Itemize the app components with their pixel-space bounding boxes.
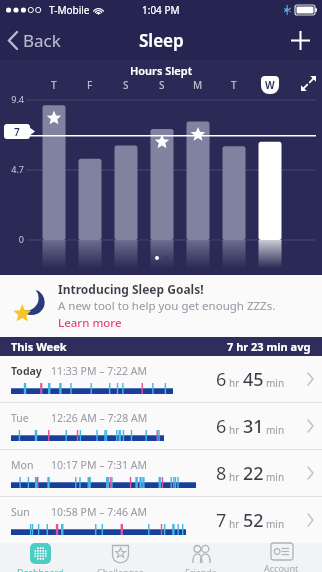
staticText: 0: [2, 233, 24, 245]
staticText: 7: [14, 125, 20, 139]
staticText: W: [265, 78, 275, 92]
button[interactable]: Dashboard: [0, 543, 80, 572]
staticText: A new tool to help you get enough ZZZs.: [58, 298, 276, 314]
staticText: 22: [243, 461, 264, 486]
staticText: min: [266, 376, 285, 390]
staticText: 45: [243, 367, 264, 392]
staticText: 31: [243, 414, 264, 439]
staticText: 7 hr 23 min avg: [227, 339, 311, 354]
button[interactable]: Introducing Sleep Goals!: [0, 275, 322, 337]
staticText: This Week: [11, 339, 67, 354]
staticText: T-Mobile: [49, 3, 90, 17]
button[interactable]: Sun: [0, 497, 322, 543]
staticText: 4.7: [2, 163, 24, 175]
staticText: Tue: [11, 411, 51, 425]
staticText: 12:26 AM – 7:28 AM: [51, 411, 148, 425]
button[interactable]: Today: [0, 356, 322, 402]
staticText: 6: [216, 414, 227, 439]
staticText: 8: [216, 461, 227, 486]
staticText: 10:58 PM – 7:46 AM: [51, 505, 147, 519]
button[interactable]: Expand chart: [295, 70, 322, 97]
button[interactable]: Tue: [0, 403, 322, 449]
staticText: 1:04 PM: [142, 3, 180, 17]
staticText: Back: [23, 29, 61, 52]
staticText: 52: [243, 508, 264, 533]
staticText: min: [266, 423, 285, 437]
button[interactable]: Learn more: [58, 315, 122, 331]
staticText: 11:33 PM – 7:22 AM: [51, 364, 147, 378]
button[interactable]: Account: [241, 543, 322, 572]
staticText: M: [193, 78, 203, 92]
staticText: 10:17 PM – 7:31 AM: [51, 458, 147, 472]
staticText: Sleep: [139, 29, 184, 52]
staticText: T: [51, 78, 57, 92]
staticText: Dashboard: [17, 566, 64, 572]
staticText: Sun: [11, 505, 51, 519]
button[interactable]: Back: [0, 23, 71, 58]
staticText: S: [159, 78, 165, 92]
button[interactable]: Add sleep log: [279, 23, 322, 58]
staticText: Learn more: [58, 315, 122, 331]
staticText: Mon: [11, 458, 51, 472]
button[interactable]: Friends: [160, 543, 241, 572]
staticText: 7: [216, 508, 227, 533]
staticText: Friends: [185, 566, 217, 572]
staticText: 6: [216, 367, 227, 392]
staticText: min: [266, 517, 285, 531]
staticText: hr: [229, 423, 240, 437]
staticText: Hours Slept: [130, 63, 193, 78]
staticText: F: [87, 78, 93, 92]
staticText: hr: [229, 517, 240, 531]
staticText: T: [231, 78, 237, 92]
staticText: min: [266, 470, 285, 484]
staticText: Today: [11, 364, 51, 378]
staticText: hr: [229, 376, 240, 390]
staticText: Account: [264, 562, 299, 572]
staticText: Introducing Sleep Goals!: [58, 281, 204, 297]
button[interactable]: Mon: [0, 450, 322, 496]
button[interactable]: Challenges: [80, 543, 160, 572]
staticText: S: [123, 78, 129, 92]
staticText: 9.4: [2, 93, 24, 105]
staticText: hr: [229, 470, 240, 484]
staticText: Challenges: [97, 566, 144, 572]
